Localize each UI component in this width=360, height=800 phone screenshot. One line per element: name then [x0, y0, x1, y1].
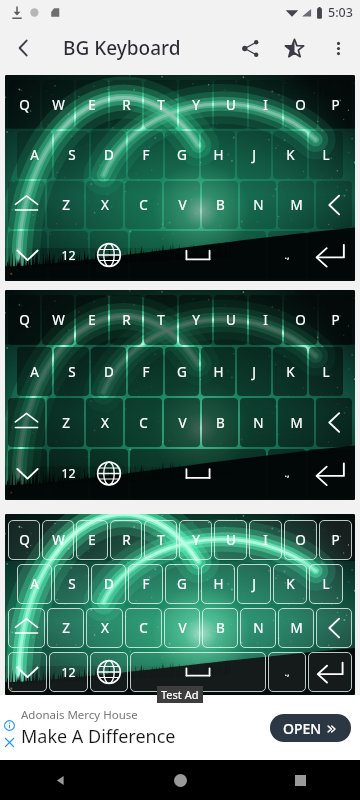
button[interactable]: Z — [47, 181, 84, 229]
button[interactable]: G — [165, 131, 199, 179]
button[interactable]: E — [76, 80, 108, 129]
button[interactable]: globe — [90, 652, 128, 692]
button[interactable]: V — [164, 398, 200, 447]
button[interactable]: chevron_down — [8, 652, 47, 692]
button[interactable]: B — [202, 608, 238, 648]
button[interactable]: O — [284, 80, 317, 129]
button[interactable]: K — [273, 564, 307, 604]
button[interactable]: V — [164, 608, 200, 648]
button[interactable]: J — [237, 564, 271, 604]
button[interactable]: F — [128, 564, 163, 604]
button[interactable]: H — [201, 564, 235, 604]
button[interactable]: F — [128, 131, 163, 179]
button[interactable]: Keyboard theme preview — [5, 290, 355, 500]
button[interactable]: S — [54, 564, 89, 604]
button[interactable]: Back — [0, 760, 120, 800]
button[interactable]: S — [54, 131, 89, 179]
button[interactable]: J — [237, 131, 271, 179]
button[interactable]: X — [86, 608, 123, 648]
button[interactable]: T — [144, 520, 177, 560]
button[interactable]: Y — [179, 520, 212, 560]
button[interactable]: M — [278, 181, 314, 229]
button[interactable]: globe — [90, 449, 128, 498]
button[interactable]: K — [273, 347, 307, 396]
button[interactable]: P — [319, 520, 352, 560]
button[interactable]: Share — [228, 26, 272, 70]
button[interactable]: W — [42, 80, 74, 129]
button[interactable]: O — [284, 520, 317, 560]
button[interactable]: P — [319, 80, 352, 129]
button[interactable]: A — [17, 347, 52, 396]
button[interactable]: M — [278, 398, 314, 447]
button[interactable]: N — [240, 398, 276, 447]
button[interactable]: A — [17, 131, 52, 179]
button[interactable]: backspace — [316, 398, 352, 447]
button[interactable]: L — [309, 347, 343, 396]
button[interactable]: D — [91, 131, 126, 179]
button[interactable]: R — [110, 520, 142, 560]
button[interactable]: OPEN — [270, 714, 351, 742]
button[interactable]: Ad information — [3, 719, 16, 732]
button[interactable]: C — [125, 398, 162, 447]
button[interactable]: J — [237, 347, 271, 396]
button[interactable]: B — [202, 181, 238, 229]
button[interactable]: B — [202, 398, 238, 447]
button[interactable]: Q — [8, 520, 40, 560]
button[interactable]: C — [125, 608, 162, 648]
button[interactable]: ., — [268, 231, 306, 279]
button[interactable]: T — [144, 295, 177, 345]
button[interactable]: Close ad — [3, 736, 16, 749]
button[interactable]: globe — [90, 231, 128, 279]
button[interactable]: A — [17, 564, 52, 604]
button[interactable]: I — [249, 520, 282, 560]
button[interactable]: space — [130, 449, 266, 498]
button[interactable]: Keyboard theme preview — [5, 75, 355, 281]
button[interactable]: W — [42, 295, 74, 345]
button[interactable]: H — [201, 347, 235, 396]
button[interactable]: G — [165, 347, 199, 396]
button[interactable]: C — [125, 181, 162, 229]
button[interactable]: P — [319, 295, 352, 345]
button[interactable]: L — [309, 564, 343, 604]
button[interactable]: O — [284, 295, 317, 345]
button[interactable]: space — [130, 652, 266, 692]
button[interactable]: Y — [179, 80, 212, 129]
button[interactable]: More options — [316, 26, 360, 70]
button[interactable]: chevron_down — [8, 449, 47, 498]
button[interactable]: T — [144, 80, 177, 129]
button[interactable]: Z — [47, 608, 84, 648]
button[interactable]: Home — [120, 760, 240, 800]
button[interactable]: U — [214, 295, 247, 345]
button[interactable]: S — [54, 347, 89, 396]
button[interactable]: Recent apps — [240, 760, 360, 800]
button[interactable]: L — [309, 131, 343, 179]
button[interactable]: backspace — [316, 608, 352, 648]
button[interactable]: K — [273, 131, 307, 179]
button[interactable]: H — [201, 131, 235, 179]
button[interactable]: enter — [308, 652, 352, 692]
button[interactable]: backspace — [316, 181, 352, 229]
button[interactable]: Q — [8, 80, 40, 129]
button[interactable]: Favorite — [272, 26, 316, 70]
button[interactable]: D — [91, 347, 126, 396]
button[interactable]: G — [165, 564, 199, 604]
button[interactable]: R — [110, 295, 142, 345]
button[interactable]: chevron_down — [8, 231, 47, 279]
button[interactable]: W — [42, 520, 74, 560]
button[interactable]: ., — [268, 449, 306, 498]
button[interactable]: N — [240, 181, 276, 229]
button[interactable]: X — [86, 398, 123, 447]
button[interactable]: X — [86, 181, 123, 229]
button[interactable]: Keyboard theme preview — [5, 514, 355, 695]
button[interactable]: enter — [308, 449, 352, 498]
button[interactable]: I — [249, 295, 282, 345]
button[interactable]: R — [110, 80, 142, 129]
button[interactable]: shift — [8, 608, 45, 648]
button[interactable]: D — [91, 564, 126, 604]
button[interactable]: ., — [268, 652, 306, 692]
button[interactable]: 12 — [49, 449, 88, 498]
button[interactable]: shift — [8, 398, 45, 447]
button[interactable]: U — [214, 520, 247, 560]
button[interactable]: E — [76, 295, 108, 345]
button[interactable]: M — [278, 608, 314, 648]
